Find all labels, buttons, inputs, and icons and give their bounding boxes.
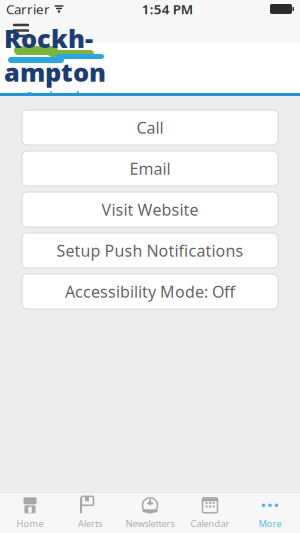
button[interactable]: Alerts [60,493,120,533]
staticText: Calendar [190,517,229,530]
button[interactable]: Accessibility Mode: Off [22,274,278,309]
staticText: Home [16,517,43,530]
staticText: Regional Council [26,89,80,121]
staticText: Email [129,158,170,179]
button[interactable]: More [240,493,300,533]
button[interactable]: Call [22,110,278,145]
button[interactable]: Email [22,151,278,186]
button[interactable]: Setup Push Notifications [22,233,278,268]
staticText: Visit Website [101,199,198,220]
button[interactable]: Newsletters [120,493,180,533]
staticText: Setup Push Notifications [56,240,243,261]
staticText: Call [136,117,163,138]
staticText: 1:54 PM [142,0,193,18]
button[interactable]: Home [0,493,60,533]
staticText: Newsletters [125,517,174,530]
staticText: Alerts [78,517,102,530]
button[interactable]: Menu [4,18,38,43]
staticText: More [258,517,281,530]
button[interactable]: Calendar [180,493,240,533]
staticText: Accessibility Mode: Off [65,281,235,302]
button[interactable]: Visit Website [22,192,278,227]
staticText: Carrier [6,0,50,18]
staticText: Rockhampton [4,21,106,89]
